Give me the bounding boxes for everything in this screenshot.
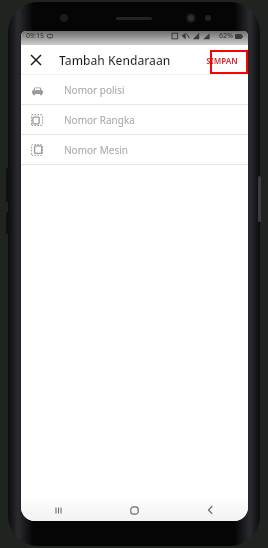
button[interactable]: Close — [21, 45, 51, 75]
button[interactable]: Nomor polisi — [21, 75, 248, 104]
staticText: Nomor polisi — [64, 83, 125, 97]
staticText: Nomor Mesin — [64, 143, 129, 157]
button[interactable]: Home — [96, 499, 172, 521]
staticText: Tambah Kendaraan — [59, 52, 171, 68]
staticText: 09:15 — [26, 31, 44, 41]
button[interactable]: Nomor Mesin — [21, 135, 248, 164]
button[interactable]: Back — [172, 499, 248, 521]
staticText: Nomor Rangka — [64, 113, 135, 127]
staticText: 62% — [219, 31, 233, 41]
staticText: SIMPAN — [206, 55, 238, 66]
button[interactable]: Recent apps — [21, 499, 96, 521]
button[interactable]: SIMPAN — [200, 50, 244, 71]
button[interactable]: Nomor Rangka — [21, 105, 248, 134]
